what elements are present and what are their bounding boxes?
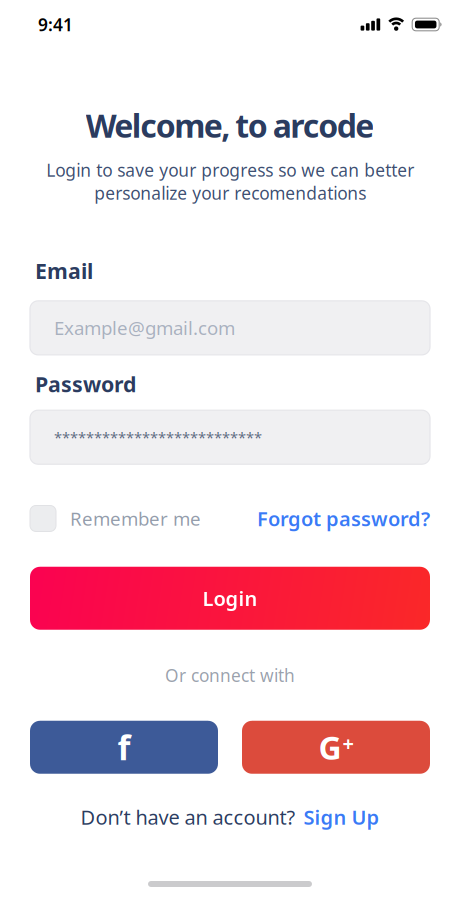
staticText: Don’t have an account? (80, 804, 295, 830)
staticText: + (342, 730, 353, 757)
staticText: ************************** (54, 427, 262, 447)
staticText: Example@gmail.com (54, 315, 235, 340)
staticText: Login (202, 585, 257, 612)
button[interactable]: Forgot password? (257, 505, 430, 532)
button[interactable]: Sign Up (303, 804, 379, 830)
button[interactable]: Login (30, 567, 430, 630)
staticText: Or connect with (165, 664, 295, 687)
button[interactable]: Email (30, 301, 430, 355)
staticText: f (117, 725, 130, 769)
staticText: 9:41 (38, 13, 73, 36)
staticText: Welcome, to arcode (86, 104, 374, 146)
staticText: Password (35, 370, 136, 398)
staticText: Forgot password? (257, 505, 430, 532)
staticText: Login to save your progress so we can be… (46, 158, 414, 204)
staticText: Sign Up (303, 804, 379, 830)
staticText: Remember me (70, 506, 201, 531)
button[interactable]: Remember me (30, 505, 201, 531)
staticText: G (318, 726, 341, 768)
button[interactable]: Password (30, 410, 430, 464)
button[interactable]: Continue with Facebook (30, 721, 218, 774)
staticText: Email (35, 256, 93, 285)
button[interactable]: Continue with Google (242, 721, 430, 774)
